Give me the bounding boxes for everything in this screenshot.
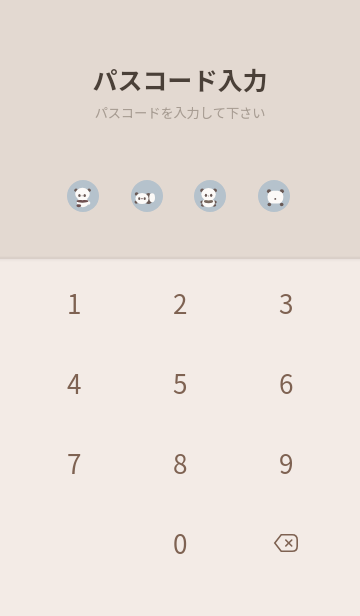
staticText: 3	[279, 284, 294, 322]
staticText: 1	[67, 284, 82, 322]
button[interactable]: 3	[233, 263, 339, 343]
staticText: 0	[173, 524, 188, 562]
staticText: パスコード入力	[0, 61, 360, 97]
staticText: 4	[67, 364, 82, 402]
button[interactable]: 7	[21, 423, 127, 503]
staticText: 5	[173, 364, 188, 402]
button[interactable]: 0	[127, 503, 233, 583]
staticText: 9	[279, 444, 294, 482]
button[interactable]: 4	[21, 343, 127, 423]
staticText: 8	[173, 444, 188, 482]
button[interactable]: 9	[233, 423, 339, 503]
button[interactable]: 6	[233, 343, 339, 423]
button[interactable]: Delete	[233, 503, 339, 583]
button[interactable]: 8	[127, 423, 233, 503]
staticText: 6	[279, 364, 294, 402]
button[interactable]: 5	[127, 343, 233, 423]
staticText: 7	[67, 444, 82, 482]
button[interactable]: 2	[127, 263, 233, 343]
staticText: 2	[173, 284, 188, 322]
staticText: パスコードを入力して下さい	[0, 103, 360, 122]
button[interactable]: 1	[21, 263, 127, 343]
